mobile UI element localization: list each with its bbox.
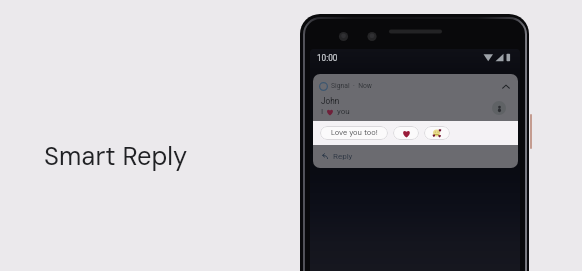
staticText: Signal · Now (331, 82, 372, 90)
button[interactable]: Love you too! (320, 126, 388, 140)
staticText: Love you too! (331, 128, 378, 138)
staticText: Reply (333, 152, 353, 161)
staticText: Smart Reply (44, 140, 188, 173)
staticText: you (337, 107, 350, 116)
staticText: I (321, 107, 324, 116)
button[interactable]: Collapse (499, 80, 512, 93)
button[interactable]: Reply (313, 145, 518, 168)
staticText: 10:00 (317, 53, 338, 63)
staticText: John (321, 96, 340, 106)
button[interactable] (393, 126, 419, 140)
button[interactable] (424, 126, 450, 140)
